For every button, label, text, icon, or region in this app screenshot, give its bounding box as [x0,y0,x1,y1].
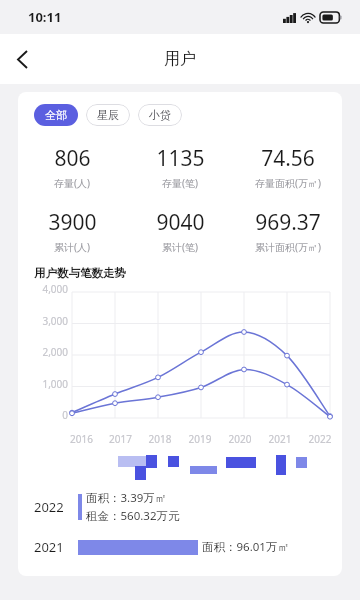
staticText: 969.37 [255,208,321,237]
button[interactable]: 小贷 [138,104,182,126]
staticText: 0 [18,408,68,422]
staticText: 806 [54,144,91,173]
button[interactable]: 806 [18,144,126,190]
staticText: 存量(笔) [162,176,198,190]
staticText: 2021 [34,538,74,556]
staticText: 4,000 [18,282,68,296]
button[interactable]: 74.56 [234,144,342,190]
staticText: 10:11 [28,8,62,26]
button[interactable]: 1135 [126,144,234,190]
button[interactable]: 3900 [18,208,126,254]
staticText: 2020 [220,432,260,446]
staticText: 面积：3.39万㎡ [86,490,167,506]
button[interactable]: 9040 [126,208,234,254]
staticText: 存量(人) [54,176,90,190]
button[interactable]: 全部 [34,104,78,126]
staticText: 2021 [260,432,300,446]
button[interactable]: 星辰 [86,104,130,126]
staticText: 2017 [101,432,140,446]
staticText: 1,000 [18,377,68,391]
staticText: 2,000 [18,345,68,359]
staticText: 小贷 [149,108,171,122]
staticText: 2018 [140,432,180,446]
button[interactable]: 2022 [34,490,342,524]
staticText: 用户数与笔数走势 [34,266,126,280]
staticText: 累计面积(万㎡) [255,240,321,254]
staticText: 存量面积(万㎡) [255,176,321,190]
button[interactable]: 2021 [34,538,342,556]
staticText: 累计(笔) [162,240,198,254]
button[interactable]: Back [0,37,44,81]
button[interactable]: 969.37 [234,208,342,254]
staticText: 租金：560.32万元 [86,508,180,524]
staticText: 用户 [164,49,196,69]
staticText: 累计(人) [54,240,90,254]
staticText: 星辰 [97,108,119,122]
staticText: 2022 [34,498,74,516]
staticText: 3900 [48,208,97,237]
staticText: 2016 [62,432,101,446]
staticText: 2019 [180,432,220,446]
staticText: 全部 [45,108,67,122]
staticText: 74.56 [261,144,315,173]
staticText: 2022 [300,432,340,446]
staticText: 3,000 [18,314,68,328]
staticText: 1135 [156,144,205,173]
staticText: 9040 [156,208,205,237]
staticText: 面积：96.01万㎡ [202,539,289,555]
